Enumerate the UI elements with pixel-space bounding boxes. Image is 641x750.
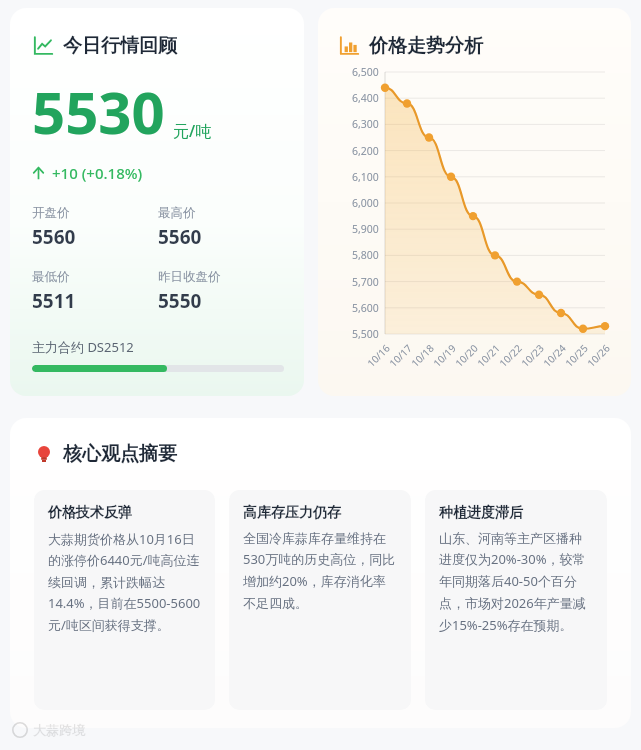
other: Bar chart bbox=[338, 35, 360, 57]
other: Key points bbox=[34, 444, 54, 464]
staticText: +10 (+0.18%) bbox=[52, 163, 143, 183]
staticText: 昨日收盘价 bbox=[158, 269, 221, 285]
staticText: 5550 bbox=[158, 288, 202, 314]
button[interactable]: Bar chart bbox=[338, 34, 483, 58]
staticText: 5560 bbox=[158, 224, 202, 250]
staticText: 元/吨 bbox=[173, 120, 212, 142]
staticText: 高库存压力仍存 bbox=[243, 504, 341, 522]
button[interactable]: 种植进度滞后 bbox=[425, 490, 607, 710]
staticText: 5560 bbox=[32, 224, 76, 250]
staticText: 价格技术反弹 bbox=[48, 504, 132, 522]
staticText: 全国冷库蒜库存量维持在530万吨的历史高位，同比增加约20%，库存消化率不足四成… bbox=[243, 530, 397, 612]
staticText: 最高价 bbox=[158, 205, 196, 221]
staticText: 5511 bbox=[32, 288, 76, 314]
staticText: 山东、河南等主产区播种进度仅为20%-30%，较常年同期落后40-50个百分点，… bbox=[439, 530, 593, 634]
staticText: 5530 bbox=[32, 72, 165, 151]
staticText: 今日行情回顾 bbox=[63, 34, 177, 58]
button[interactable]: Key points bbox=[34, 442, 177, 466]
staticText: 大蒜期货价格从10月16日的涨停价6440元/吨高位连续回调，累计跌幅达14.4… bbox=[48, 530, 201, 634]
button[interactable]: Line chart bbox=[32, 34, 177, 58]
button[interactable]: 高库存压力仍存 bbox=[229, 490, 411, 710]
staticText: 最低价 bbox=[32, 269, 70, 285]
staticText: 大蒜跨境 bbox=[33, 722, 85, 738]
staticText: 开盘价 bbox=[32, 205, 70, 221]
button[interactable]: 价格技术反弹 bbox=[34, 490, 215, 710]
staticText: 价格走势分析 bbox=[369, 34, 483, 58]
staticText: 核心观点摘要 bbox=[63, 442, 177, 466]
other: Line chart bbox=[32, 35, 54, 57]
staticText: 主力合约 DS2512 bbox=[32, 338, 134, 356]
staticText: 种植进度滞后 bbox=[439, 504, 523, 522]
